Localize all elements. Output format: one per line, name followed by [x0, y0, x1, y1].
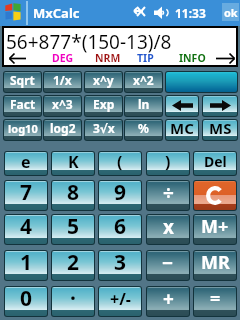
staticText: 2 — [67, 251, 80, 277]
staticText: 5 — [67, 215, 80, 241]
staticText: ( — [117, 152, 123, 173]
button[interactable]: Sqrt — [4, 72, 41, 92]
staticText: TIP — [137, 51, 154, 65]
staticText: 6 — [114, 215, 127, 241]
staticText: 3 — [114, 251, 127, 277]
button[interactable]: K — [52, 152, 94, 175]
button[interactable]: − — [147, 251, 189, 280]
button[interactable]: ) — [147, 152, 189, 175]
staticText: x — [163, 215, 174, 240]
button[interactable]: 5 — [52, 215, 94, 244]
staticText: 9 — [114, 181, 127, 207]
button[interactable]: 4 — [5, 215, 47, 244]
button[interactable]: x^3 — [44, 96, 81, 116]
button[interactable]: x — [147, 215, 189, 244]
staticText: ) — [165, 152, 171, 173]
button[interactable]: log10 — [4, 120, 41, 140]
staticText: NRM — [95, 51, 121, 65]
button[interactable]: Del — [194, 152, 236, 175]
staticText: ok — [224, 5, 238, 20]
staticText: log2 — [50, 120, 76, 136]
staticText: x^2 — [133, 72, 154, 88]
button[interactable]: Next — [216, 52, 235, 65]
button[interactable]: 1/x — [44, 72, 81, 92]
staticText: 7 — [20, 181, 33, 207]
staticText: 8 — [67, 181, 80, 207]
button[interactable]: ( — [99, 152, 141, 175]
button[interactable]: x^2 — [125, 72, 162, 92]
button[interactable]: 1 — [5, 251, 47, 280]
button[interactable]: Fact — [4, 96, 41, 116]
staticText: 56+877*(150-13)/8 — [6, 29, 172, 55]
staticText: ln — [138, 96, 150, 112]
staticText: 0 — [20, 287, 33, 313]
button[interactable]: Clear — [194, 181, 236, 210]
button[interactable]: Result — [166, 72, 237, 92]
button[interactable]: 3 — [99, 251, 141, 280]
button[interactable]: Exp — [85, 96, 122, 116]
staticText: x^y — [93, 72, 114, 88]
staticText: − — [162, 251, 174, 276]
staticText: DEG — [52, 51, 74, 65]
staticText: x^3 — [52, 96, 73, 112]
staticText: K — [68, 152, 79, 173]
button[interactable]: MR — [194, 251, 236, 280]
staticText: MxCalc — [33, 4, 80, 22]
button[interactable]: ÷ — [147, 181, 189, 210]
button[interactable]: = — [194, 287, 236, 316]
staticText: = — [210, 287, 221, 311]
staticText: ÷ — [163, 181, 174, 206]
button[interactable]: 0 — [5, 287, 47, 316]
button[interactable]: Move left — [166, 96, 198, 116]
staticText: Del — [204, 152, 227, 171]
staticText: % — [138, 120, 149, 136]
staticText: M+ — [201, 215, 229, 239]
staticText: +/- — [110, 288, 131, 310]
staticText: + — [163, 287, 174, 312]
staticText: 11:33 — [175, 5, 206, 21]
button[interactable]: 9 — [99, 181, 141, 210]
button[interactable]: NRM — [95, 51, 121, 65]
button[interactable]: 2 — [52, 251, 94, 280]
button[interactable]: % — [125, 120, 162, 140]
button[interactable]: DEG — [52, 51, 74, 65]
button[interactable]: Move right — [203, 96, 237, 116]
button[interactable]: Previous — [9, 52, 26, 65]
button[interactable]: ln — [125, 96, 162, 116]
staticText: MS — [209, 120, 232, 138]
button[interactable]: 7 — [5, 181, 47, 210]
staticText: · — [70, 287, 76, 313]
staticText: Sqrt — [10, 72, 35, 88]
staticText: INFO — [179, 51, 206, 65]
button[interactable]: 3√x — [85, 120, 122, 140]
button[interactable]: x^y — [85, 72, 122, 92]
button[interactable]: MS — [203, 120, 237, 140]
staticText: log10 — [8, 121, 38, 136]
button[interactable]: + — [147, 287, 189, 316]
button[interactable]: 8 — [52, 181, 94, 210]
button[interactable]: · — [52, 287, 94, 316]
button[interactable]: e — [5, 152, 47, 175]
staticText: Fact — [10, 96, 36, 112]
staticText: e — [21, 152, 31, 173]
staticText: MR — [201, 251, 230, 275]
staticText: 1 — [20, 251, 33, 277]
button[interactable]: ok — [222, 3, 239, 21]
staticText: 3√x — [93, 120, 115, 136]
button[interactable]: MC — [166, 120, 198, 140]
staticText: Exp — [93, 96, 115, 112]
button[interactable]: TIP — [137, 51, 154, 65]
button[interactable]: log2 — [44, 120, 81, 140]
button[interactable]: M+ — [194, 215, 236, 244]
button[interactable]: +/- — [99, 287, 141, 316]
staticText: MC — [170, 120, 194, 138]
button[interactable]: INFO — [179, 51, 206, 65]
button[interactable]: 6 — [99, 215, 141, 244]
staticText: 4 — [20, 215, 33, 241]
staticText: 1/x — [53, 72, 72, 88]
